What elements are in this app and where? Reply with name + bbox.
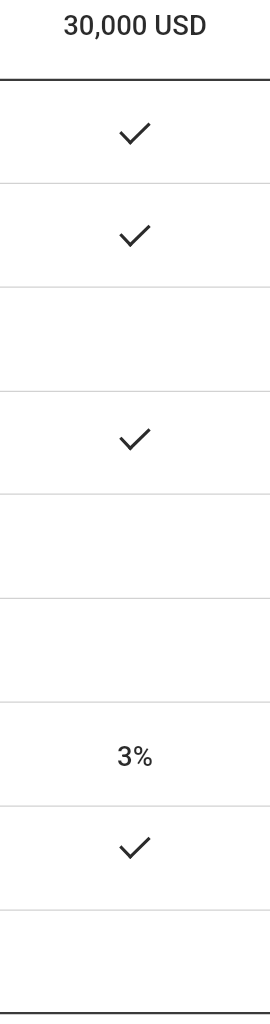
button[interactable]: Included (0, 183, 270, 287)
staticText: 30,000 USD (0, 9, 270, 41)
button[interactable]: 30,000 USD (0, 0, 270, 65)
other: Included (0, 80, 270, 183)
button[interactable]: 3% (0, 702, 270, 806)
other: Included (0, 806, 270, 910)
button[interactable] (0, 494, 270, 598)
button[interactable]: Included (0, 391, 270, 494)
other: Included (0, 183, 270, 287)
button[interactable]: Included (0, 806, 270, 910)
other: Included (0, 391, 270, 494)
button[interactable]: Included (0, 80, 270, 183)
button[interactable] (0, 598, 270, 702)
button[interactable] (0, 910, 270, 1013)
staticText: 3% (117, 740, 153, 772)
button[interactable] (0, 287, 270, 391)
